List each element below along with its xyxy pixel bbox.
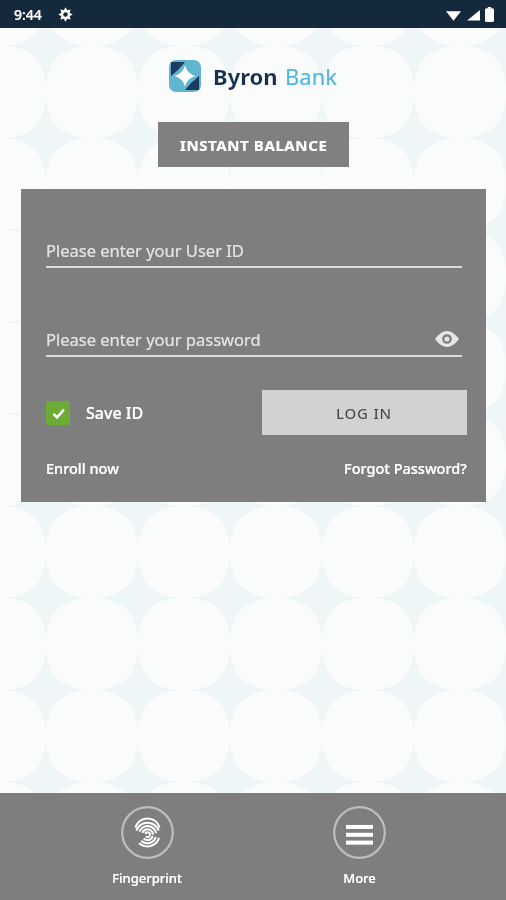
staticText: Bank [285, 61, 337, 91]
staticText: More [343, 869, 376, 887]
button[interactable]: Forgot Password? [344, 458, 467, 478]
staticText: Fingerprint [112, 869, 182, 887]
button[interactable]: Save ID [46, 401, 144, 425]
staticText: Save ID [86, 402, 144, 424]
staticText: Forgot Password? [344, 458, 467, 478]
staticText: LOG IN [336, 403, 393, 423]
staticText: Please enter your password [46, 328, 261, 350]
button[interactable]: Show password [432, 324, 462, 354]
staticText: Enroll now [46, 458, 119, 478]
staticText: Please enter your User ID [46, 239, 244, 261]
button[interactable]: Enroll now [46, 458, 119, 478]
button[interactable]: Fingerprint login [97, 793, 197, 887]
button[interactable]: More options [309, 793, 409, 887]
button[interactable]: INSTANT BALANCE [158, 122, 349, 167]
button[interactable]: LOG IN [262, 390, 467, 435]
staticText: 9:44 [14, 5, 42, 24]
button[interactable]: Please enter your password [46, 321, 462, 357]
staticText: INSTANT BALANCE [180, 135, 328, 155]
button[interactable]: Please enter your User ID [46, 232, 462, 268]
staticText: Byron [213, 61, 278, 91]
